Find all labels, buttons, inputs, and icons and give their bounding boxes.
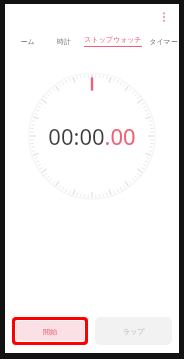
button[interactable]: ラップ: [95, 317, 172, 345]
staticText: 00:00.00: [48, 121, 136, 151]
staticText: ーム: [20, 37, 35, 46]
staticText: タイマー: [149, 37, 178, 46]
button[interactable]: 開始: [16, 321, 84, 341]
staticText: ストップウォッチ: [84, 35, 142, 44]
button[interactable]: ストップウォッチ: [79, 30, 147, 52]
staticText: 時計: [57, 37, 71, 46]
button[interactable]: 時計: [49, 30, 79, 52]
button[interactable]: More options: [155, 8, 173, 26]
button[interactable]: ーム: [5, 30, 49, 52]
button[interactable]: タイマー: [147, 30, 179, 52]
staticText: ラップ: [123, 327, 145, 336]
staticText: 開始: [43, 327, 57, 336]
